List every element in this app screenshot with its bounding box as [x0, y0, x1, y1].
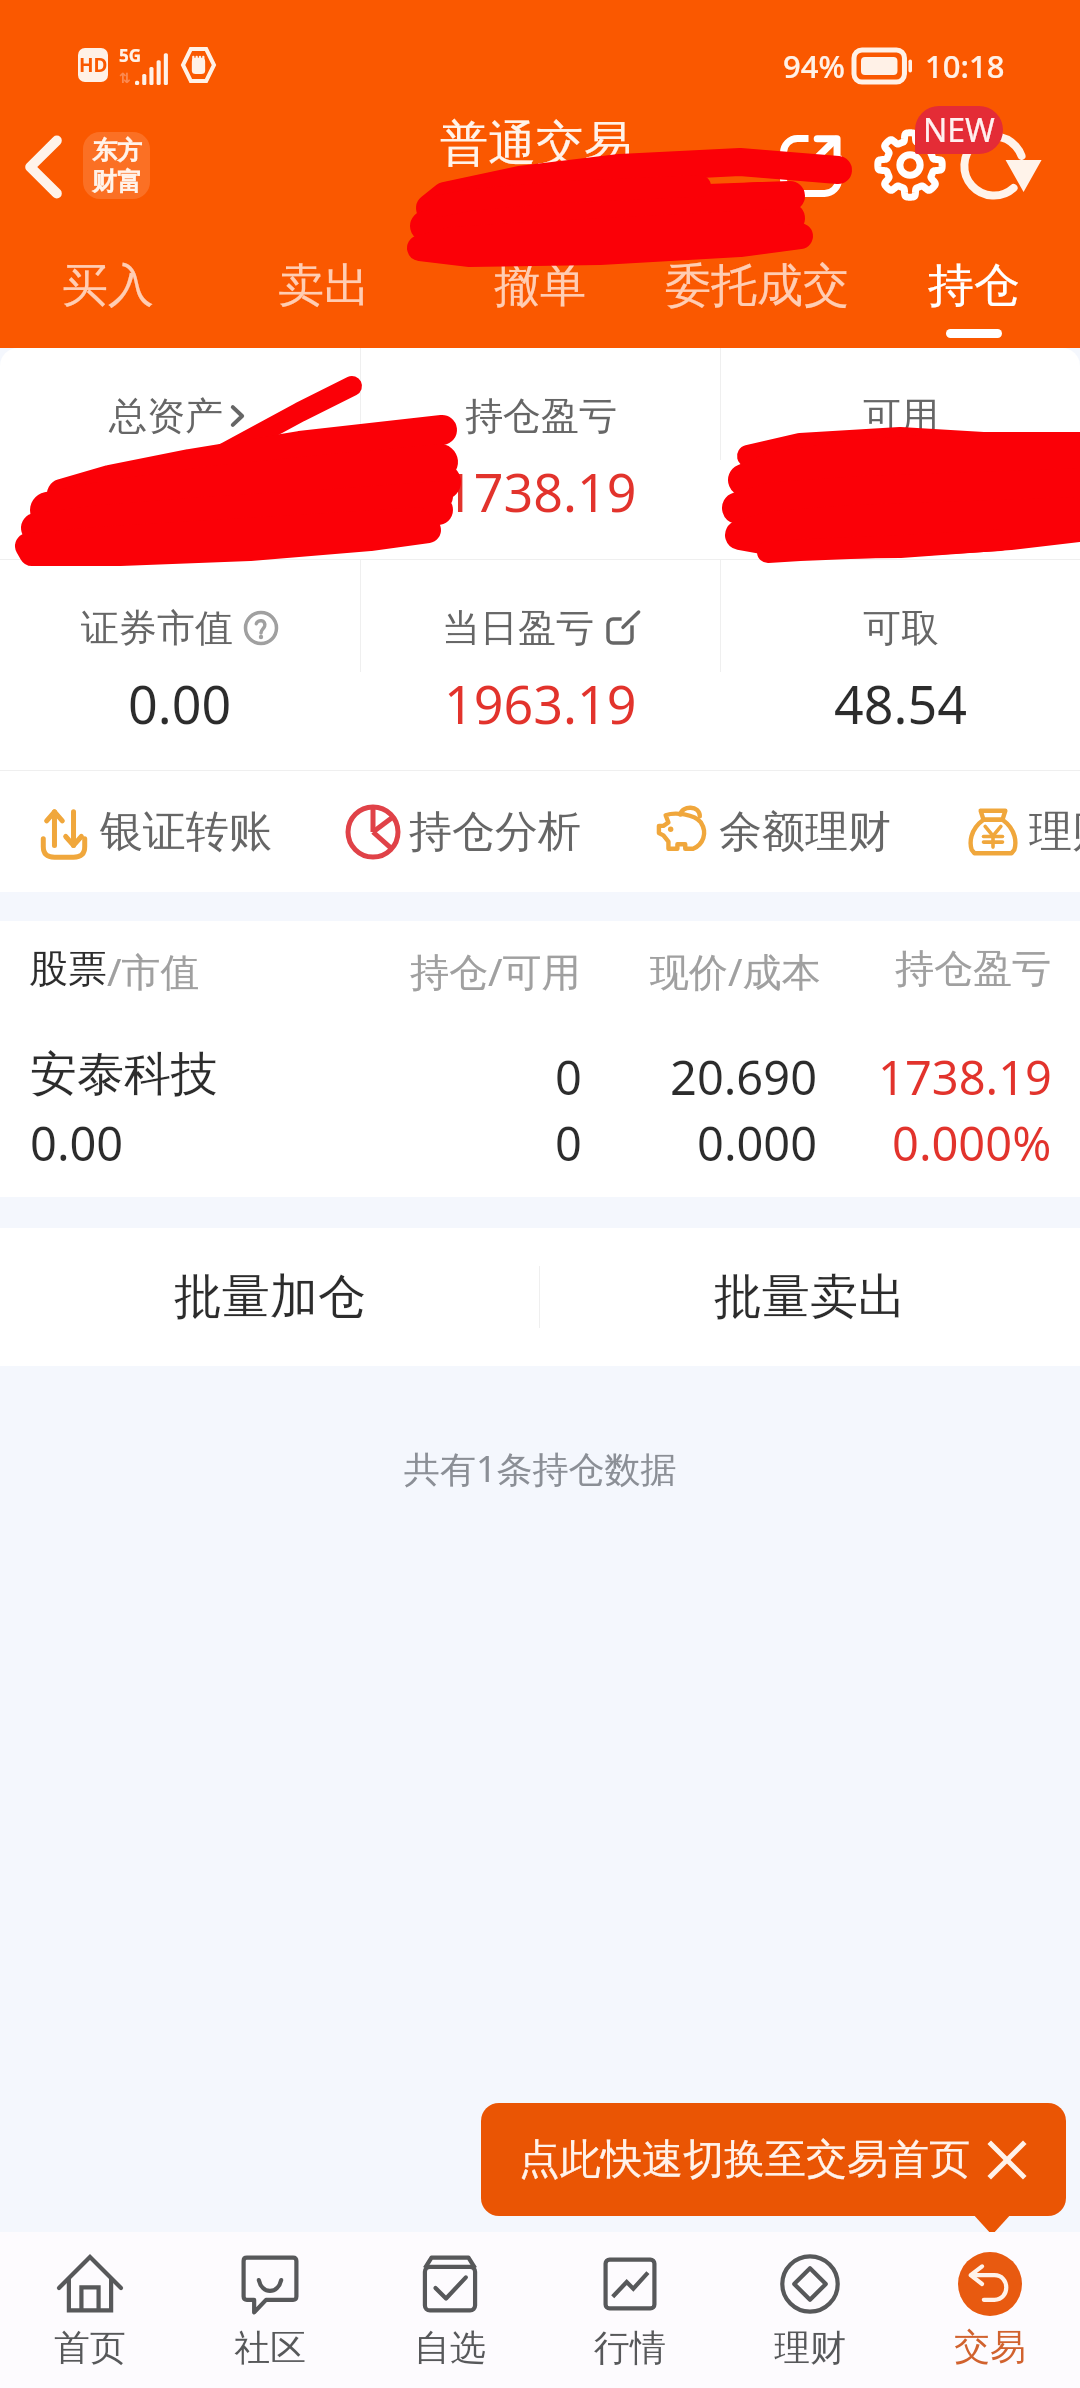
- button[interactable]: 持仓盈亏: [361, 348, 720, 527]
- button[interactable]: 银证转账: [36, 771, 326, 892]
- staticText: 批量加仓: [174, 1267, 366, 1327]
- staticText: 10:18: [925, 45, 1005, 87]
- staticText: 可取: [863, 604, 939, 652]
- staticText: 1963.19: [444, 668, 637, 739]
- button[interactable]: 余额理财: [655, 771, 945, 892]
- staticText: ⇅: [119, 70, 131, 86]
- staticText: 5G: [119, 44, 142, 67]
- staticText: 财富: [92, 166, 142, 197]
- button[interactable]: 理财: [965, 771, 1080, 892]
- button[interactable]: 交易: [900, 2232, 1080, 2388]
- staticText: 买入: [62, 257, 154, 315]
- staticText: 安泰科技: [30, 1045, 218, 1104]
- staticText: NEW: [923, 108, 995, 152]
- button[interactable]: 安泰科技: [0, 1010, 1080, 1197]
- staticText: 行情: [594, 2325, 666, 2370]
- staticText: 0.000%: [892, 1111, 1052, 1175]
- staticText: 普通交易: [440, 114, 632, 174]
- staticText: 东方: [92, 135, 142, 166]
- staticText: /市值: [107, 944, 200, 997]
- button[interactable]: 撤单: [485, 238, 595, 338]
- staticText: 交易: [954, 2324, 1026, 2369]
- staticText: 自选: [414, 2325, 486, 2370]
- staticText: 持仓/可用: [410, 944, 581, 997]
- button[interactable]: 可取: [721, 560, 1080, 739]
- button[interactable]: 首页: [0, 2232, 180, 2388]
- button[interactable]: 总资产: [0, 348, 360, 440]
- button[interactable]: 买入: [53, 238, 163, 338]
- staticText: 银证转账: [100, 805, 310, 859]
- staticText: 0.00: [128, 668, 232, 739]
- staticText: 持仓: [928, 257, 1020, 315]
- button[interactable]: 当日盈亏: [361, 560, 720, 739]
- staticText: 持仓分析: [409, 805, 619, 859]
- staticText: 0: [555, 1111, 582, 1175]
- staticText: 理财: [1029, 805, 1080, 859]
- staticText: 0.00: [30, 1111, 124, 1175]
- staticText: 94%: [783, 45, 845, 87]
- staticText: 当日盈亏: [442, 604, 594, 652]
- staticText: 0.000: [697, 1111, 818, 1175]
- staticText: 20.690: [670, 1045, 818, 1109]
- button[interactable]: Fullscreen: [763, 118, 859, 214]
- button[interactable]: Back: [0, 124, 86, 210]
- staticText: 共有1条持仓数据: [404, 1444, 677, 1493]
- staticText: 撤单: [494, 257, 586, 315]
- staticText: 现价/成本: [650, 944, 821, 997]
- staticText: 总资产: [109, 392, 223, 440]
- staticText: 卖出: [278, 257, 370, 315]
- button[interactable]: 委托成交: [662, 238, 852, 338]
- staticText: 证券市值: [81, 604, 233, 652]
- staticText: 首页: [54, 2325, 126, 2370]
- staticText: 余额理财: [719, 805, 929, 859]
- button[interactable]: 批量卖出: [540, 1228, 1080, 1366]
- staticText: 点此快速切换至交易首页: [519, 2134, 970, 2186]
- button[interactable]: Settings: [862, 117, 958, 213]
- staticText: 理财: [774, 2325, 846, 2370]
- button[interactable]: 东方: [83, 132, 150, 199]
- button[interactable]: 自选: [360, 2232, 540, 2388]
- button[interactable]: 理财: [720, 2232, 900, 2388]
- button[interactable]: 持仓分析: [345, 771, 635, 892]
- staticText: 0: [555, 1045, 582, 1109]
- staticText: 48.54: [834, 668, 967, 739]
- staticText: 持仓盈亏: [465, 392, 617, 440]
- button[interactable]: 卖出: [269, 238, 379, 338]
- button[interactable]: 持仓: [919, 238, 1029, 338]
- staticText: 1738.19: [878, 1045, 1052, 1109]
- staticText: 1738.19: [444, 456, 637, 527]
- staticText: 股票: [29, 944, 107, 993]
- button[interactable]: 社区: [180, 2232, 360, 2388]
- button[interactable]: Refresh: [952, 118, 1048, 214]
- staticText: 持仓盈亏: [895, 944, 1051, 993]
- button[interactable]: 批量加仓: [0, 1228, 539, 1366]
- staticText: 社区: [234, 2325, 306, 2370]
- staticText: 委托成交: [665, 257, 849, 315]
- staticText: 批量卖出: [714, 1267, 906, 1327]
- button[interactable]: 可用: [721, 348, 1080, 440]
- staticText: HD: [79, 52, 108, 78]
- staticText: 可用: [863, 392, 939, 440]
- button[interactable]: 点此快速切换至交易首页: [481, 2103, 1066, 2216]
- button[interactable]: 行情: [540, 2232, 720, 2388]
- button[interactable]: 证券市值: [0, 560, 360, 739]
